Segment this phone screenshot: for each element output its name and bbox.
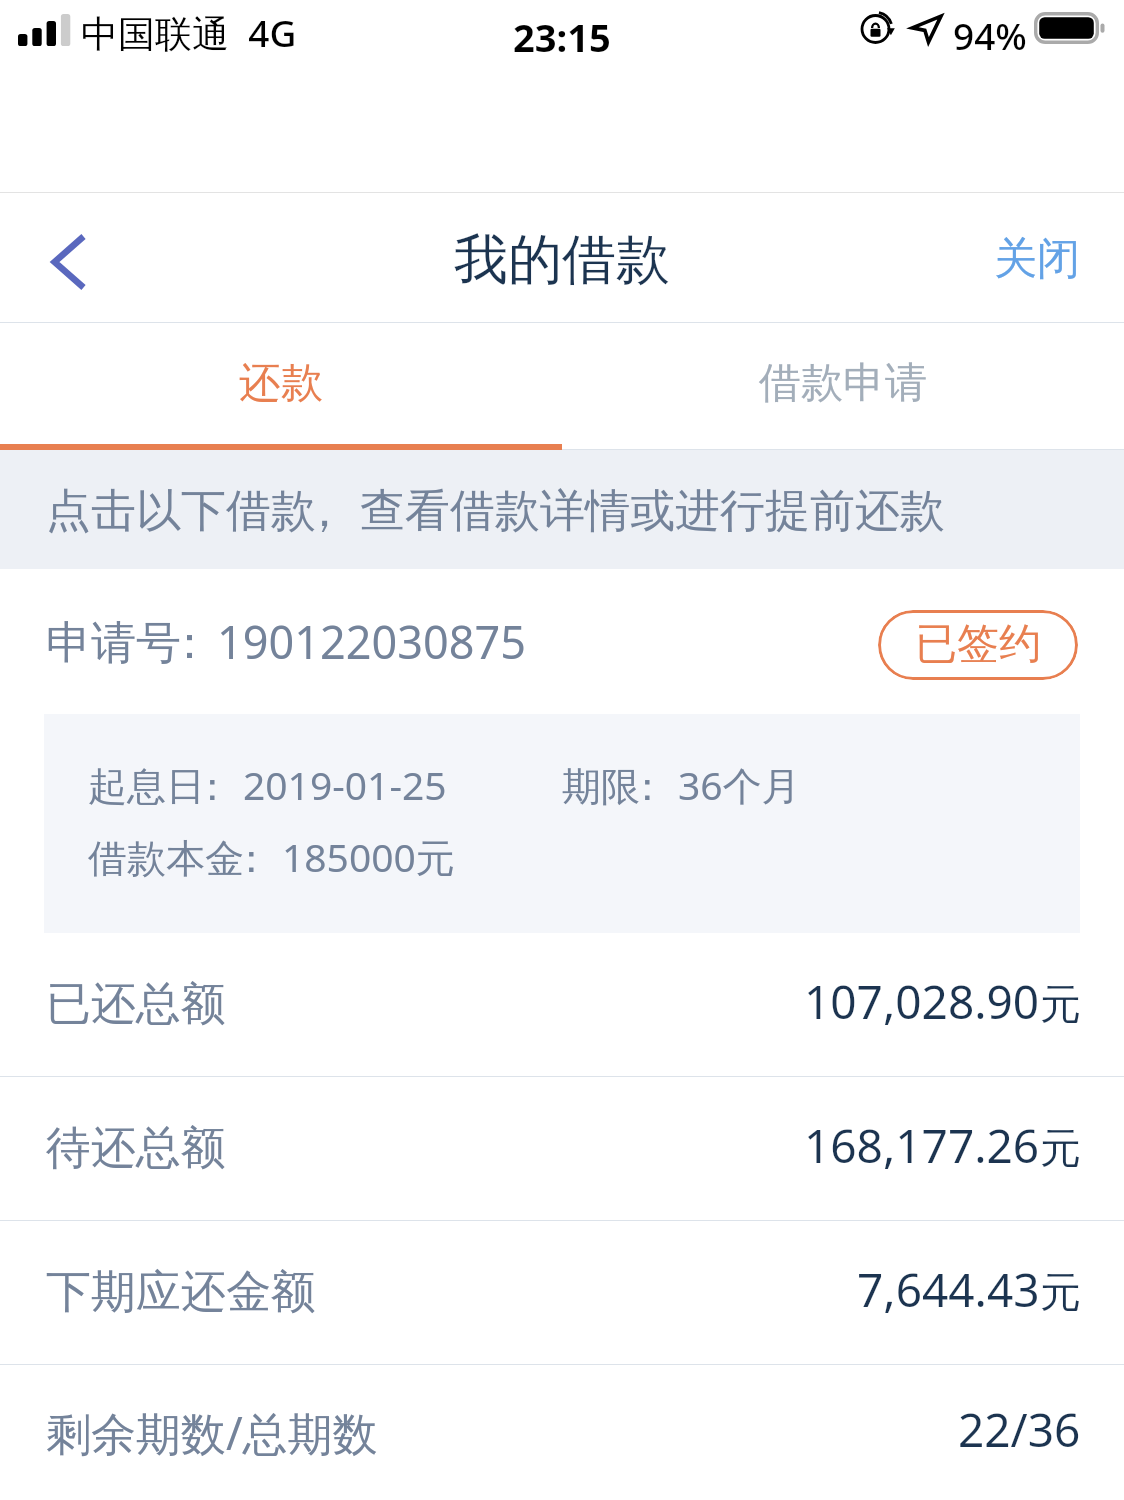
button[interactable]: 关闭 [954,193,1124,322]
staticText: ： [193,762,209,811]
button[interactable]: 借款申请 [562,323,1124,450]
staticText: 借款本金 [88,834,244,883]
staticText: 168,177.26 [804,1114,1040,1177]
staticText: 查看借款详情或进行提前还款 [360,483,945,540]
staticText: 36个月 [678,758,801,811]
staticText: 22/36 [958,1398,1081,1461]
staticText: ： [232,834,248,883]
staticText: 我的借款 [454,226,670,294]
staticText: 185000元 [282,830,455,883]
staticText: 下期应还金额 [46,1264,316,1321]
staticText: 94% [953,10,1027,60]
staticText: 7,644.43 [857,1258,1040,1321]
button[interactable]: 下期应还金额 [0,1221,1124,1364]
staticText: 中国联通 4G [81,7,297,58]
staticText: 2019-01-25 [243,758,447,811]
staticText: 190122030875 [217,611,526,672]
staticText: 关闭 [994,232,1080,286]
button[interactable]: 还款 [0,323,562,450]
button[interactable]: 已签约 [878,610,1078,680]
staticText: 申请号 [46,615,181,672]
staticText: 107,028.90 [804,970,1040,1033]
staticText: ： [628,762,644,811]
button[interactable]: 剩余期数/总期数 [0,1365,1124,1500]
staticText: 已还总额 [46,976,226,1033]
staticText: 元 [1040,1267,1081,1319]
staticText: 起息日 [88,762,205,811]
staticText: 待还总额 [46,1120,226,1177]
staticText: 元 [1040,979,1081,1031]
staticText: ， [302,483,320,540]
button[interactable]: 申请号 [0,569,1124,714]
button[interactable]: Back [0,193,140,322]
staticText: 还款 [239,357,323,410]
staticText: ： [167,615,185,672]
staticText: 23:15 [513,11,611,63]
button[interactable]: 已还总额 [0,933,1124,1076]
staticText: 期限 [562,762,640,811]
staticText: 借款申请 [759,357,927,410]
staticText: 已签约 [915,618,1041,671]
staticText: 元 [1040,1123,1081,1175]
staticText: 点击以下借款 [46,483,316,540]
button[interactable]: 待还总额 [0,1077,1124,1220]
staticText: 剩余期数/总期数 [46,1402,378,1463]
